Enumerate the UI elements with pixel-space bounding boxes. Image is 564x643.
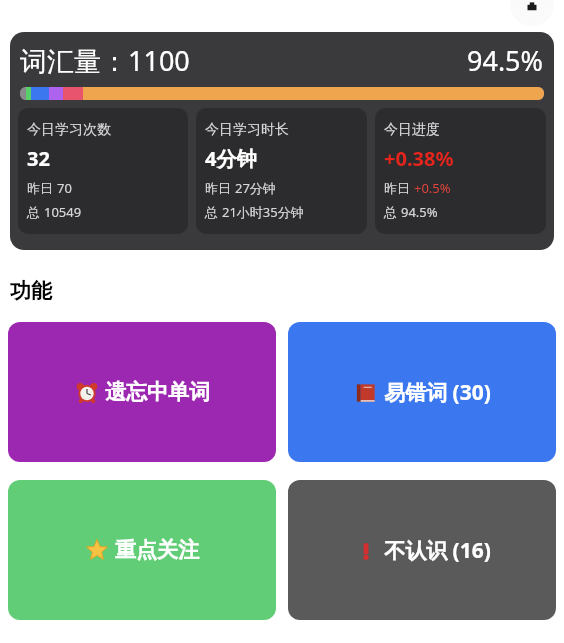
button[interactable]: 今日进度 xyxy=(375,108,546,234)
staticText: 94.5% xyxy=(401,203,438,221)
button[interactable]: Settings xyxy=(510,0,554,26)
staticText: 总 xyxy=(205,203,222,221)
button[interactable]: 今日学习次数 xyxy=(18,108,188,234)
button[interactable]: 词汇量：1100 xyxy=(10,32,554,250)
staticText: 今日进度 xyxy=(384,121,440,139)
staticText: 昨日 xyxy=(205,179,235,197)
staticText: 重点关注 xyxy=(115,537,199,563)
staticText: 总 xyxy=(384,203,401,221)
staticText: 总 xyxy=(27,203,44,221)
button[interactable]: 今日学习时长 xyxy=(196,108,367,234)
staticText: +0.5% xyxy=(414,179,451,197)
staticText: 32 xyxy=(27,145,50,172)
staticText: 易错词 (30) xyxy=(384,378,491,407)
staticText: 昨日 xyxy=(384,179,414,197)
staticText: 昨日 xyxy=(27,179,57,197)
staticText: 功能 xyxy=(10,278,52,304)
staticText: 94.5% xyxy=(467,42,544,79)
staticText: 4分钟 xyxy=(205,145,257,172)
staticText: 21小时35分钟 xyxy=(222,203,304,221)
staticText: 今日学习时长 xyxy=(205,121,289,139)
staticText: 今日学习次数 xyxy=(27,121,111,139)
button[interactable]: 不认识 (16) xyxy=(288,480,556,620)
staticText: 10549 xyxy=(44,203,82,221)
button[interactable]: 重点关注 xyxy=(8,480,276,620)
staticText: 遗忘中单词 xyxy=(105,379,210,405)
staticText: 27分钟 xyxy=(235,179,276,197)
staticText: 词汇量：1100 xyxy=(20,42,190,79)
staticText: +0.38% xyxy=(384,145,454,172)
button[interactable]: 易错词 (30) xyxy=(288,322,556,462)
button[interactable]: 遗忘中单词 xyxy=(8,322,276,462)
staticText: 70 xyxy=(57,179,72,197)
staticText: 不认识 (16) xyxy=(384,536,491,565)
